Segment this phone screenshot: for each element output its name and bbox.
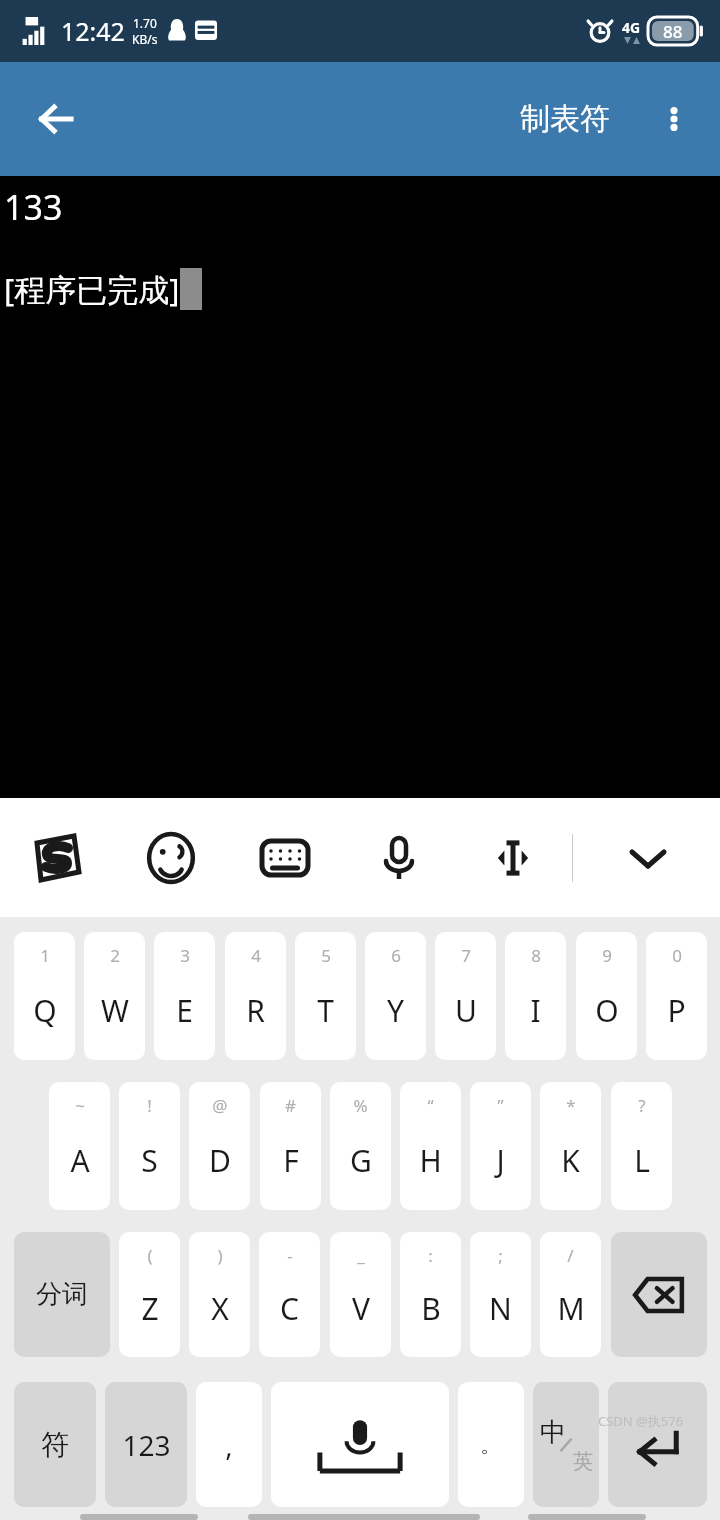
button[interactable]: 8 [505,932,566,1060]
staticText: D [209,1140,231,1181]
button[interactable]: ) [189,1232,250,1357]
button[interactable]: Switch Chinese English [533,1382,599,1507]
staticText: : [428,1244,433,1267]
staticText: W [101,990,129,1031]
button[interactable]: ~ [49,1082,110,1210]
staticText: 88 [663,20,683,43]
button[interactable]: 7 [435,932,496,1060]
button[interactable]: 0 [646,932,707,1060]
staticText: _ [357,1244,365,1267]
staticText: 9 [602,944,612,967]
staticText: U [455,990,477,1031]
button[interactable]: ? [611,1082,672,1210]
button[interactable]: 9 [576,932,637,1060]
button[interactable]: 6 [365,932,426,1060]
button[interactable]: “ [400,1082,461,1210]
button[interactable]: Emoji [133,820,209,896]
staticText: S [141,1140,158,1181]
staticText: @ [212,1094,228,1117]
staticText: 2 [110,944,120,967]
button[interactable]: 5 [295,932,356,1060]
button[interactable]: @ [189,1082,250,1210]
staticText: ” [497,1094,504,1117]
staticText: 1.70 [133,15,157,31]
staticText: 133 [4,184,63,230]
staticText: [程序已完成] [4,268,180,310]
staticText: T [317,990,334,1031]
button[interactable]: * [540,1082,601,1210]
button[interactable]: Space [271,1382,449,1507]
staticText: K [561,1140,580,1181]
button[interactable]: % [330,1082,391,1210]
staticText: 4G [622,18,641,37]
staticText: - [287,1244,293,1267]
staticText: L [634,1140,650,1181]
staticText: 123 [122,1426,171,1464]
staticText: 3 [180,944,190,967]
staticText: ! [147,1094,152,1117]
button[interactable]: # [260,1082,321,1210]
button[interactable]: : [400,1232,461,1357]
button[interactable]: Keyboard layout [247,820,323,896]
button[interactable]: 分词 [14,1232,110,1357]
staticText: 5 [321,944,331,967]
staticText: 8 [531,944,541,967]
staticText: V [352,1288,370,1329]
staticText: 6 [391,944,401,967]
button[interactable]: Move cursor [475,820,551,896]
button[interactable]: _ [330,1232,391,1357]
button[interactable]: ; [470,1232,531,1357]
staticText: / [567,1244,574,1267]
staticText: ~ [75,1094,85,1117]
button[interactable]: / [540,1232,601,1357]
button[interactable]: Sogou input [19,820,95,896]
staticText: C [280,1288,299,1329]
staticText: 符 [41,1427,69,1462]
staticText: * [566,1094,576,1117]
staticText: CSDN @执576 [598,1412,684,1430]
staticText: 分词 [36,1278,88,1311]
button[interactable]: - [259,1232,320,1357]
staticText: 4 [251,944,261,967]
button[interactable]: More options [642,87,706,151]
staticText: F [283,1140,299,1181]
staticText: “ [427,1094,434,1117]
staticText: 12:42 [61,14,125,48]
button[interactable]: , [196,1382,262,1507]
staticText: # [285,1094,296,1117]
button[interactable]: Back [20,83,92,155]
button[interactable]: Enter [608,1382,707,1507]
button[interactable]: 4 [225,932,286,1060]
staticText: E [176,990,193,1031]
staticText: G [350,1140,372,1181]
button[interactable]: ( [119,1232,180,1357]
staticText: O [595,990,619,1031]
button[interactable]: Voice input [361,820,437,896]
button[interactable]: ” [470,1082,531,1210]
button[interactable]: 。 [458,1382,524,1507]
staticText: Z [141,1288,159,1329]
staticText: N [489,1288,512,1329]
button[interactable]: 3 [154,932,215,1060]
staticText: J [496,1140,505,1181]
staticText: ( [147,1244,153,1267]
button[interactable]: ! [119,1082,180,1210]
button[interactable]: Backspace [611,1232,707,1357]
button[interactable]: 2 [84,932,145,1060]
staticText: Y [387,990,404,1031]
staticText: B [421,1288,441,1329]
staticText: I [530,990,541,1031]
staticText: ) [217,1244,223,1267]
staticText: ? [638,1094,646,1117]
staticText: % [353,1094,368,1117]
staticText: M [557,1288,585,1329]
staticText: H [419,1140,442,1181]
button[interactable]: 符 [14,1382,96,1507]
button[interactable]: 123 [105,1382,187,1507]
button[interactable]: Hide keyboard [610,820,686,896]
button[interactable]: 1 [14,932,75,1060]
staticText: X [211,1288,229,1329]
staticText: 0 [672,944,682,967]
staticText: 中 [540,1416,566,1449]
staticText: A [70,1140,90,1181]
